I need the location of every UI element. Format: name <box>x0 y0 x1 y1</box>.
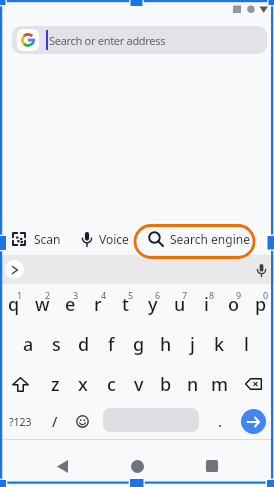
staticText: t <box>122 292 129 317</box>
button[interactable]: m <box>206 364 233 404</box>
staticText: / <box>52 412 58 431</box>
staticText: r <box>94 292 102 317</box>
staticText: g <box>133 332 145 357</box>
button[interactable]: s <box>42 324 70 364</box>
button[interactable]: j <box>179 324 206 364</box>
staticText: w <box>35 292 50 317</box>
button[interactable]: p <box>247 284 274 324</box>
staticText: c <box>107 372 116 397</box>
staticText: 8 <box>209 289 215 301</box>
staticText: l <box>244 332 249 357</box>
button[interactable]: f <box>98 324 125 364</box>
button[interactable]: g <box>125 324 152 364</box>
button[interactable]: e <box>56 284 84 324</box>
staticText: x <box>78 372 88 397</box>
button[interactable]: t <box>112 284 139 324</box>
staticText: o <box>228 292 239 317</box>
staticText: 9 <box>236 289 242 301</box>
button[interactable] <box>0 364 41 404</box>
staticText: m <box>211 372 229 397</box>
staticText: i <box>204 292 209 317</box>
staticText: n <box>187 372 199 397</box>
staticText: ?123 <box>9 415 32 429</box>
button[interactable]: / <box>41 404 68 439</box>
staticText: z <box>51 372 60 397</box>
button[interactable]: r <box>84 284 112 324</box>
button[interactable] <box>96 404 206 439</box>
button[interactable]: x <box>69 364 97 404</box>
button[interactable]: y <box>139 284 166 324</box>
staticText: u <box>174 292 186 317</box>
staticText: y <box>148 292 158 317</box>
button[interactable] <box>5 260 24 279</box>
button[interactable] <box>38 443 86 487</box>
button[interactable] <box>241 409 266 434</box>
button[interactable]: u <box>166 284 193 324</box>
button[interactable]: i <box>193 284 220 324</box>
button[interactable]: ?123 <box>0 404 41 439</box>
button[interactable]: d <box>70 324 98 364</box>
staticText: h <box>160 332 172 357</box>
staticText: 6 <box>155 289 161 301</box>
staticText: 2 <box>45 289 51 301</box>
button[interactable]: v <box>125 364 152 404</box>
button[interactable]: c <box>97 364 125 404</box>
button[interactable]: n <box>179 364 206 404</box>
button[interactable] <box>252 261 270 279</box>
staticText: d <box>78 332 90 357</box>
staticText: p <box>255 292 267 317</box>
staticText: k <box>214 332 225 357</box>
button[interactable]: Scan <box>12 223 61 255</box>
staticText: Scan <box>34 231 61 247</box>
button[interactable] <box>113 443 161 487</box>
button[interactable] <box>233 364 274 404</box>
button[interactable] <box>68 404 96 439</box>
staticText: b <box>160 372 172 397</box>
staticText: Search or enter address <box>49 33 166 48</box>
button[interactable]: z <box>41 364 69 404</box>
staticText: a <box>23 332 34 357</box>
button[interactable] <box>188 443 236 487</box>
staticText: 3 <box>73 289 79 301</box>
staticText: e <box>65 292 76 317</box>
button[interactable]: Search or enter address <box>12 26 267 54</box>
button[interactable]: k <box>206 324 233 364</box>
staticText: Voice <box>99 231 129 247</box>
staticText: 0 <box>263 289 269 301</box>
staticText: 4 <box>101 289 107 301</box>
staticText: v <box>134 372 144 397</box>
button[interactable]: b <box>152 364 179 404</box>
staticText: 7 <box>182 289 188 301</box>
button[interactable]: a <box>14 324 42 364</box>
staticText: 5 <box>128 289 134 301</box>
staticText: 1 <box>17 289 23 301</box>
button[interactable]: w <box>28 284 56 324</box>
button[interactable]: Search engine <box>148 223 250 255</box>
button[interactable]: . <box>206 404 233 439</box>
staticText: f <box>108 332 115 357</box>
button[interactable]: q <box>0 284 28 324</box>
button[interactable]: l <box>233 324 260 364</box>
button[interactable]: Voice <box>82 223 129 255</box>
staticText: j <box>190 332 195 357</box>
staticText: . <box>218 412 222 431</box>
staticText: Search engine <box>170 231 250 247</box>
staticText: q <box>8 292 20 317</box>
staticText: s <box>52 332 61 357</box>
button[interactable]: o <box>220 284 247 324</box>
button[interactable]: h <box>152 324 179 364</box>
